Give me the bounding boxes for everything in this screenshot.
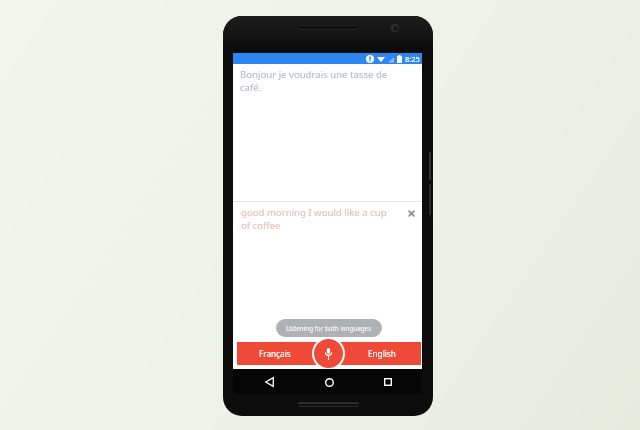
button[interactable]: Français xyxy=(237,342,329,365)
button[interactable]: English xyxy=(329,342,421,365)
button[interactable]: Bonjour je voudrais une tasse de café. xyxy=(233,64,422,201)
staticText: Français xyxy=(259,348,291,359)
button[interactable]: Clear text xyxy=(405,207,418,220)
staticText: 8:25 xyxy=(405,54,420,64)
button[interactable]: Back xyxy=(261,374,277,390)
staticText: Bonjour je voudrais une tasse de café. xyxy=(240,68,396,94)
button[interactable]: Listening for both languages xyxy=(276,319,382,337)
button[interactable]: good morning I would like a cup of coffe… xyxy=(241,206,390,232)
staticText: English xyxy=(368,348,396,359)
button[interactable]: Recent apps xyxy=(380,374,396,390)
button[interactable]: Microphone xyxy=(314,339,343,368)
button[interactable]: Home xyxy=(321,374,337,390)
staticText: Listening for both languages xyxy=(286,324,372,333)
